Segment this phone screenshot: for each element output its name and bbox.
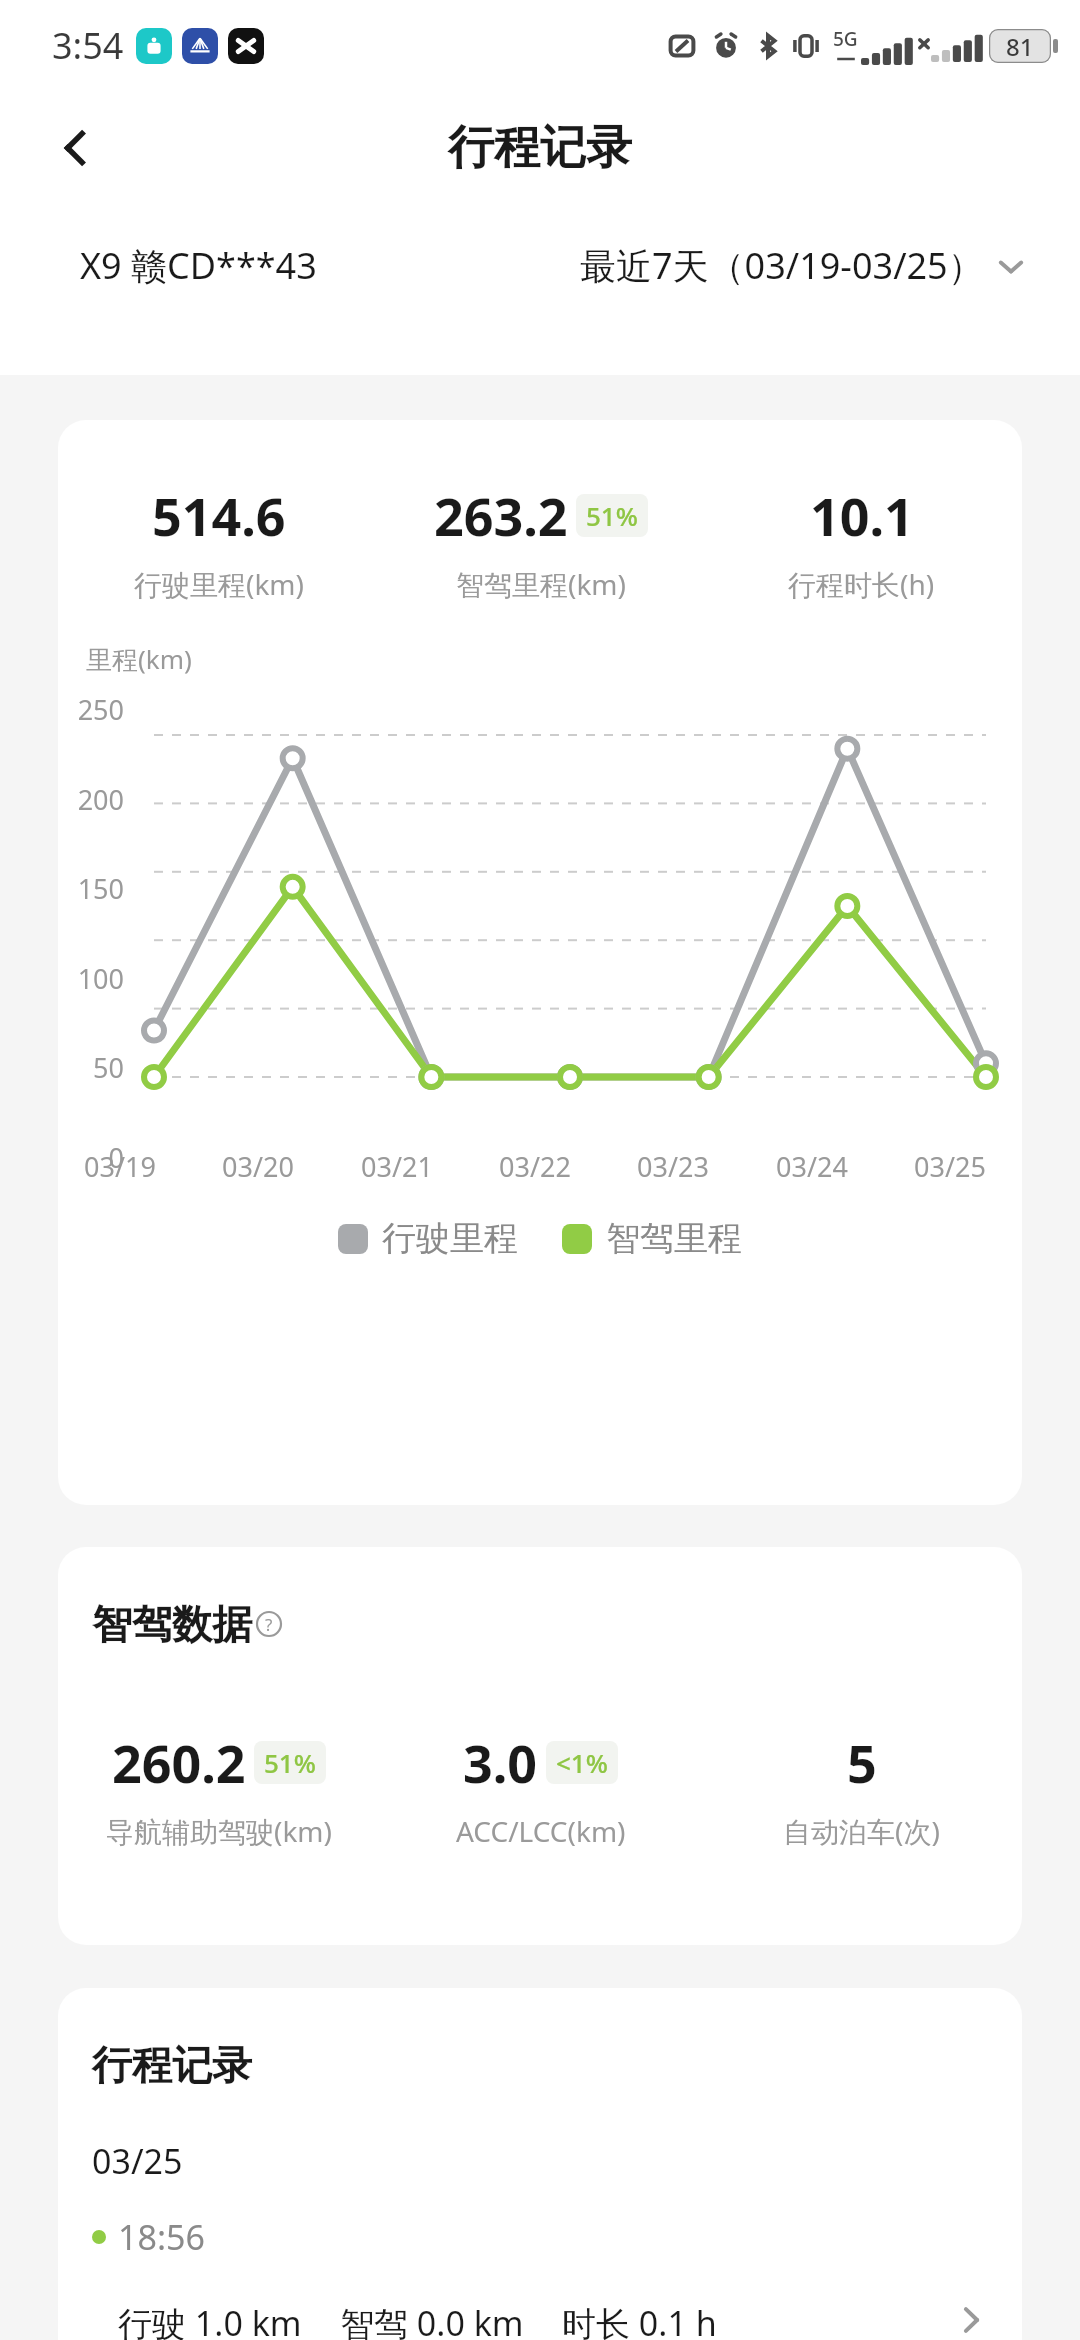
staticText: 行驶里程 — [382, 1217, 518, 1260]
staticText: 0 — [58, 1139, 124, 1176]
staticText: 最近7天（03/19-03/25） — [580, 241, 984, 290]
staticText: 03/23 — [637, 1148, 741, 1185]
staticText: 里程(km) — [86, 641, 192, 677]
staticText: 行驶里程(km) — [134, 565, 304, 603]
button[interactable]: 最近7天（03/19-03/25） — [580, 241, 1028, 290]
staticText: 50 — [58, 1049, 124, 1086]
staticText: 150 — [58, 870, 124, 907]
staticText: 260.2 — [112, 1727, 246, 1798]
staticText: 行程记录 — [448, 119, 632, 177]
staticText: 81 — [1006, 30, 1034, 63]
staticText: 时长 0.1 h — [562, 2300, 717, 2340]
button[interactable]: 18:56 — [58, 2214, 1022, 2340]
staticText: 3.0 — [463, 1727, 538, 1798]
staticText: <1% — [556, 1745, 608, 1780]
staticText: 智驾里程(km) — [456, 565, 626, 603]
staticText: 行驶 1.0 km — [118, 2300, 302, 2340]
staticText: 自动泊车(次) — [783, 1812, 940, 1850]
staticText: 03/20 — [222, 1148, 326, 1185]
staticText: 03/19 — [84, 1148, 188, 1185]
staticText: 10.1 — [810, 480, 914, 551]
button[interactable]: 帮助说明 — [256, 1611, 282, 1637]
button[interactable]: 返回 — [40, 112, 112, 184]
staticText: 5G — [833, 26, 858, 52]
staticText: 03/25 — [914, 1148, 1018, 1185]
staticText: 03/21 — [361, 1148, 465, 1185]
staticText: 51% — [586, 498, 638, 533]
staticText: 智驾数据 — [92, 1599, 252, 1649]
other: 查看行程详情 — [954, 2303, 988, 2337]
staticText: 3:54 — [52, 21, 124, 70]
staticText: 100 — [58, 960, 124, 997]
staticText: 03/22 — [499, 1148, 603, 1185]
staticText: 5 — [847, 1727, 877, 1798]
staticText: X9 赣CD***43 — [80, 241, 317, 290]
staticText: 263.2 — [434, 480, 568, 551]
staticText: 导航辅助驾驶(km) — [106, 1812, 332, 1850]
staticText: 03/24 — [776, 1148, 880, 1185]
staticText: ACC/LCC(km) — [456, 1812, 626, 1850]
staticText: 514.6 — [152, 480, 286, 551]
staticText: 行程记录 — [92, 2040, 252, 2090]
staticText: 行程时长(h) — [788, 565, 935, 603]
staticText: 250 — [58, 691, 124, 728]
staticText: 智驾 0.0 km — [340, 2300, 524, 2340]
staticText: 200 — [58, 781, 124, 818]
staticText: ? — [265, 1613, 273, 1636]
staticText: 51% — [264, 1745, 316, 1780]
staticText: 03/25 — [92, 2138, 183, 2184]
staticText: 智驾里程 — [606, 1217, 742, 1260]
staticText: 18:56 — [118, 2214, 205, 2260]
